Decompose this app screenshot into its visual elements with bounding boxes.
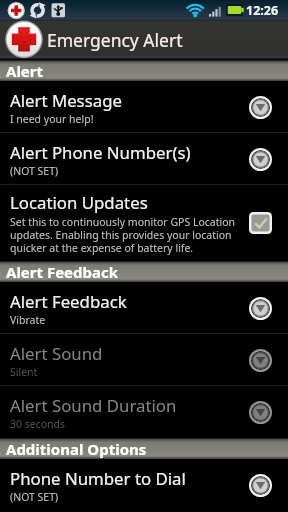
staticText: Alert <box>6 61 44 81</box>
staticText: Alert Feedback <box>10 290 127 313</box>
staticText: Set this to continuously monitor GPS Loc… <box>10 215 236 255</box>
staticText: Location Updates <box>10 191 148 214</box>
other: Open <box>249 96 272 119</box>
staticText: Alert Feedback <box>6 262 119 282</box>
other: Open <box>249 474 272 497</box>
staticText: (NOT SET) <box>10 164 59 178</box>
staticText: (NOT SET) <box>10 490 59 504</box>
staticText: Silent <box>10 365 38 379</box>
button[interactable]: Alert Phone Number(s) <box>0 133 288 185</box>
button[interactable]: Alert Message <box>0 81 288 133</box>
staticText: Emergency Alert <box>47 28 183 52</box>
staticText: Alert Sound <box>10 342 103 365</box>
other: Open <box>249 349 272 372</box>
other: Open <box>249 297 272 320</box>
staticText: Phone Number to Dial <box>10 467 186 490</box>
staticText: Alert Phone Number(s) <box>10 141 191 164</box>
staticText: 30 seconds <box>10 417 66 431</box>
other: Location updates <box>249 212 272 234</box>
button[interactable]: Location Updates <box>0 185 288 261</box>
staticText: I need your help! <box>10 112 94 126</box>
staticText: Additional Options <box>6 439 147 459</box>
button[interactable]: Alert Sound Duration <box>0 386 288 438</box>
other: Open <box>249 401 272 424</box>
staticText: Alert Sound Duration <box>10 394 177 417</box>
staticText: Alert Message <box>10 89 122 112</box>
button[interactable]: Alert Feedback <box>0 282 288 334</box>
staticText: Vibrate <box>10 313 46 327</box>
button[interactable]: Phone Number to Dial <box>0 459 288 511</box>
button[interactable]: Alert Sound <box>0 334 288 386</box>
other: Open <box>249 148 272 171</box>
staticText: 12:26 <box>246 2 279 19</box>
